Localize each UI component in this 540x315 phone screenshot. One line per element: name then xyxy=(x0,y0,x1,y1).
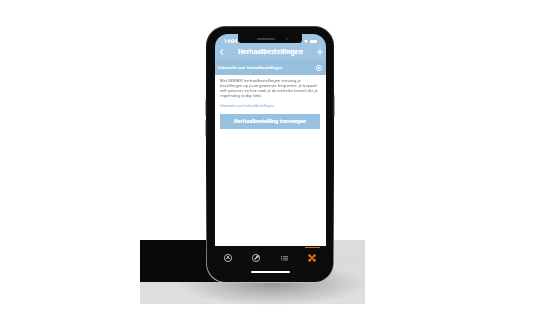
button[interactable]: Informatie over herhaalbestellingen xyxy=(220,104,275,108)
staticText: 14:04 xyxy=(224,37,238,44)
button[interactable]: Service xyxy=(248,250,264,266)
button[interactable]: Account xyxy=(220,250,236,266)
button[interactable]: Catalogus xyxy=(276,250,292,266)
staticText: Met BERNER herhaalbestellingen ontvang j… xyxy=(220,78,320,98)
button[interactable]: Berner xyxy=(304,250,320,266)
staticText: Informatie over herhaalbestellingen xyxy=(218,65,283,70)
button[interactable]: Terug xyxy=(215,46,227,58)
staticText: Herhaalbestelling toevoegen xyxy=(234,118,307,125)
button[interactable]: Herhaalbestelling toevoegen xyxy=(220,114,320,129)
button[interactable]: Informatie over herhaalbestellingen xyxy=(215,60,326,75)
button[interactable]: Toevoegen xyxy=(314,46,326,58)
staticText: Herhaalbestellingen xyxy=(238,47,303,56)
